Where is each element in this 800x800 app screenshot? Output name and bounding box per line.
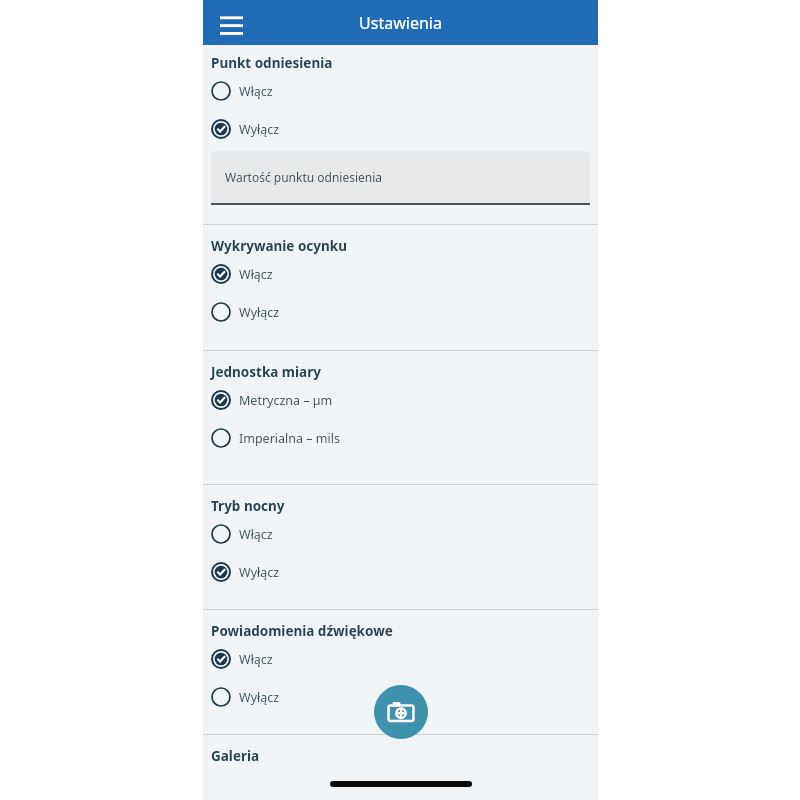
button[interactable]: Włącz: [203, 515, 598, 553]
button[interactable]: Wyłącz: [203, 110, 598, 148]
button[interactable]: Metryczna – µm: [203, 381, 598, 419]
staticText: Włącz: [239, 526, 273, 543]
staticText: Wyłącz: [239, 121, 280, 138]
staticText: Punkt odniesienia: [211, 54, 333, 72]
staticText: Galeria: [211, 747, 260, 765]
staticText: Wartość punktu odniesienia: [225, 169, 383, 185]
button[interactable]: Włącz: [203, 72, 598, 110]
staticText: Włącz: [239, 83, 273, 100]
button[interactable]: Open navigation menu: [212, 4, 250, 42]
button[interactable]: Wyłącz: [203, 553, 598, 591]
button[interactable]: Imperialna – mils: [203, 419, 598, 457]
button[interactable]: Wyłącz: [203, 678, 598, 716]
staticText: Wyłącz: [239, 564, 280, 581]
staticText: Włącz: [239, 266, 273, 283]
staticText: Wyłącz: [239, 689, 280, 706]
staticText: Jednostka miary: [211, 363, 321, 381]
button[interactable]: Włącz: [203, 255, 598, 293]
staticText: Ustawienia: [359, 12, 442, 34]
staticText: Włącz: [239, 651, 273, 668]
staticText: Metryczna – µm: [239, 392, 333, 409]
button[interactable]: Take photo: [374, 685, 428, 739]
button[interactable]: Wyłącz: [203, 293, 598, 331]
staticText: Tryb nocny: [211, 497, 285, 515]
button[interactable]: Wartość punktu odniesienia: [211, 151, 590, 203]
staticText: Imperialna – mils: [239, 430, 340, 447]
staticText: Powiadomienia dźwiękowe: [211, 622, 393, 640]
staticText: Wykrywanie ocynku: [211, 237, 347, 255]
button[interactable]: Włącz: [203, 640, 598, 678]
staticText: Wyłącz: [239, 304, 280, 321]
